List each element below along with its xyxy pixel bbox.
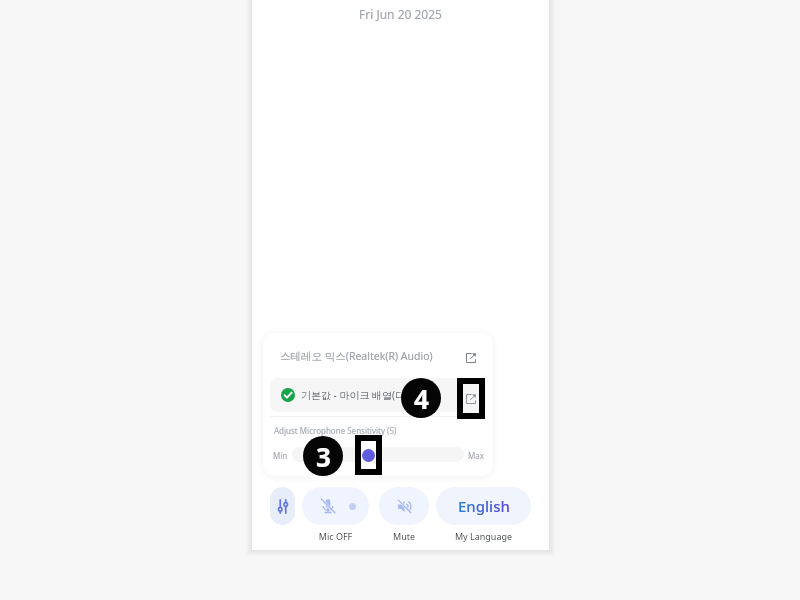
staticText: Adjust Microphone Sensitivity (5)	[274, 425, 397, 436]
staticText: 4	[414, 381, 429, 416]
staticText: Max	[468, 450, 484, 461]
staticText: Min	[273, 450, 288, 461]
button[interactable]	[379, 487, 429, 525]
staticText: My Language	[436, 530, 531, 542]
button[interactable]: Microphone sensitivity slider	[292, 447, 464, 462]
staticText: Mute	[379, 530, 429, 542]
staticText: 3	[316, 439, 331, 474]
button[interactable]: 기본값 - 마이크 배열(디지털 마이크용 인텔® 스마트 사운드 기술)	[270, 378, 486, 412]
staticText: Mic OFF	[302, 530, 369, 542]
staticText: Fri Jun 20 2025	[359, 6, 442, 22]
button[interactable]: English	[436, 487, 531, 525]
staticText: 기본값 - 마이크 배열(디지털 마이크용 인텔® 스마트 사운드 기술)	[301, 388, 444, 402]
button[interactable]: Open selected microphone settings	[467, 387, 483, 403]
staticText: 스테레오 믹스(Realtek(R) Audio)	[280, 349, 433, 363]
button[interactable]: Audio settings	[270, 487, 295, 525]
button[interactable]: Open audio device settings	[459, 346, 483, 370]
button[interactable]	[302, 487, 369, 525]
staticText: English	[458, 496, 510, 516]
